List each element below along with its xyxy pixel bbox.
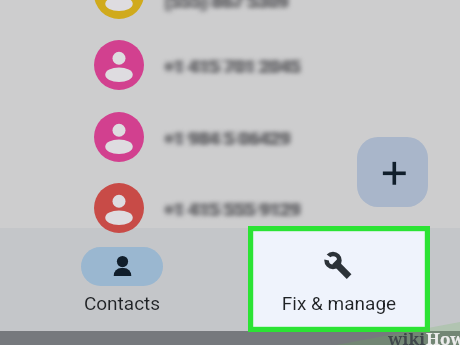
staticText: +1 415 701 2045: [161, 56, 298, 77]
staticText: (555) 867 5309: [164, 0, 289, 12]
staticText: +1 415 701 2045: [165, 56, 302, 77]
staticText: +1 984 5 06429: [162, 128, 289, 149]
staticText: wiki: [388, 327, 426, 345]
staticText: +1 415 555 9129: [162, 199, 299, 220]
staticText: How: [426, 327, 460, 345]
staticText: +1 415 701 2045: [166, 56, 303, 77]
staticText: (555) 867 5309: [162, 0, 287, 12]
staticText: +1 415 701 2045: [164, 56, 301, 77]
button[interactable]: Create new contact: [357, 137, 428, 207]
staticText: +1 415 555 9129: [165, 199, 302, 220]
staticText: +1 415 555 9129: [166, 199, 303, 220]
staticText: +1 415 555 9129: [164, 199, 301, 220]
staticText: (555) 867 5309: [161, 0, 286, 12]
staticText: (555) 867 5309: [166, 0, 291, 12]
staticText: Fix & manage: [252, 292, 426, 314]
staticText: (555) 867 5309: [163, 0, 288, 12]
staticText: +1 984 5 06429: [161, 128, 288, 149]
staticText: +1 984 5 06429: [164, 128, 291, 149]
button[interactable]: Contacts: [0, 228, 240, 331]
staticText: +1 984 5 06429: [163, 128, 290, 149]
button[interactable]: Fix & manage: [252, 230, 426, 328]
staticText: +1 415 701 2045: [167, 56, 304, 77]
staticText: +1 984 5 06429: [165, 128, 292, 149]
staticText: +1 415 701 2045: [163, 56, 300, 77]
staticText: Contacts: [2, 292, 242, 314]
staticText: +1 415 555 9129: [163, 199, 300, 220]
staticText: (555) 867 5309: [167, 0, 292, 12]
staticText: +1 415 555 9129: [161, 199, 298, 220]
staticText: +1 415 701 2045: [162, 56, 299, 77]
staticText: +1 415 555 9129: [167, 199, 304, 220]
staticText: (555) 867 5309: [165, 0, 290, 12]
staticText: +1 984 5 06429: [167, 128, 294, 149]
staticText: +1 984 5 06429: [166, 128, 293, 149]
